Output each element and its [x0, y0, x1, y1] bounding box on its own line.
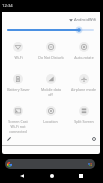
staticText: Auto-rotate — [74, 55, 94, 60]
staticText: off — [48, 92, 53, 97]
staticText: Battery Saver — [7, 87, 30, 92]
staticText: AndroidWifi — [74, 17, 97, 22]
staticText: Split Screen — [74, 119, 94, 124]
staticText: Screen Cast — [8, 119, 28, 124]
button[interactable]: Wi-Fi — [2, 42, 34, 60]
button[interactable]: Home — [45, 169, 58, 182]
button[interactable]: Do Not Disturb — [34, 42, 67, 60]
button[interactable]: Edit — [3, 133, 14, 144]
staticText: Wi-Fi — [14, 55, 23, 60]
button[interactable]: Screen Cast — [2, 106, 34, 134]
button[interactable]: Battery Saver — [2, 74, 34, 92]
button[interactable]: Search — [5, 159, 95, 169]
button[interactable]: Back — [15, 169, 28, 182]
staticText: Wi-Fi not connected — [2, 124, 34, 134]
button[interactable]: Recents — [74, 169, 87, 182]
staticText: Do Not Disturb — [38, 55, 64, 60]
staticText: Airplane mode — [71, 87, 96, 92]
button[interactable]: Location — [34, 106, 67, 124]
staticText: 12:34 — [2, 3, 13, 9]
button[interactable]: Mobile data — [34, 74, 67, 97]
button[interactable]: Settings — [88, 133, 99, 144]
button[interactable]: Split Screen — [67, 106, 100, 124]
button[interactable]: Airplane mode — [67, 74, 100, 92]
staticText: Mobile data — [41, 87, 61, 92]
staticText: Location — [43, 119, 58, 124]
button[interactable]: Auto-rotate — [67, 42, 100, 60]
